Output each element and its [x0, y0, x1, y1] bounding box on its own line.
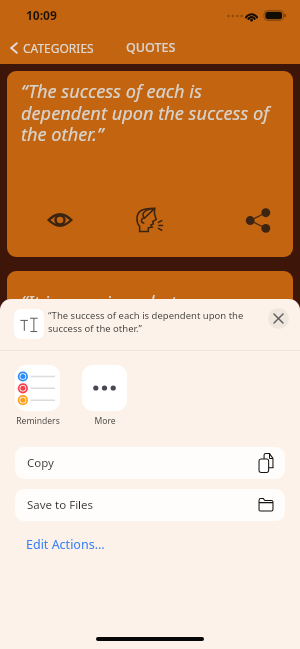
button[interactable]: Copy — [15, 447, 285, 479]
button[interactable]: Reminders — [15, 365, 60, 427]
button[interactable]: “The success of each is dependent upon t… — [7, 71, 293, 257]
staticText: “The success of each is dependent upon t… — [48, 309, 260, 334]
staticText: CATEGORIES — [23, 40, 94, 56]
button[interactable]: Share — [240, 202, 276, 238]
staticText: Edit Actions… — [26, 536, 105, 553]
button[interactable]: Show quote — [42, 202, 78, 238]
button[interactable]: Close — [268, 308, 289, 329]
staticText: Save to Files — [27, 497, 94, 513]
button[interactable]: Save to Files — [15, 489, 285, 521]
button[interactable]: Speak quote — [132, 202, 168, 238]
staticText: 10:09 — [26, 7, 57, 23]
staticText: “The success of each is dependent upon t… — [21, 79, 285, 146]
button[interactable]: Edit Actions… — [26, 534, 274, 554]
staticText: Copy — [27, 455, 54, 471]
button[interactable]: “It is amazing what you can accomplish i… — [7, 271, 293, 457]
button[interactable]: CATEGORIES — [7, 40, 94, 56]
button[interactable]: More — [82, 365, 127, 427]
staticText: QUOTES — [126, 39, 176, 56]
staticText: More — [94, 415, 116, 427]
staticText: Reminders — [16, 415, 60, 427]
staticText: “It is amazing what you can accomplish i… — [21, 290, 285, 357]
